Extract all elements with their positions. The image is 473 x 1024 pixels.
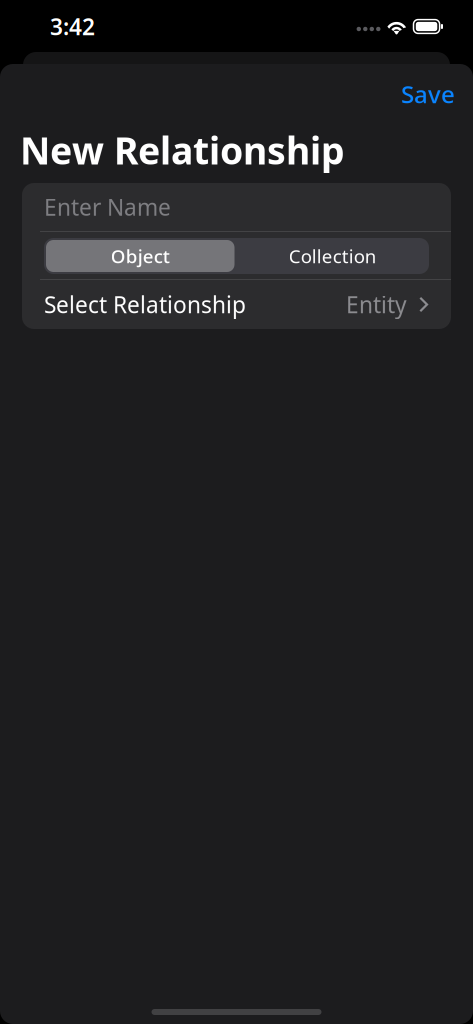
staticText: Save	[401, 78, 455, 110]
staticText: Entity	[346, 289, 407, 319]
staticText: 3:42	[50, 11, 95, 41]
staticText: Enter Name	[44, 192, 171, 222]
staticText: Collection	[289, 244, 377, 268]
button[interactable]: Collection	[236, 238, 429, 274]
button[interactable]: Object	[44, 238, 236, 274]
button[interactable]: Select Relationship	[22, 280, 451, 329]
staticText: Select Relationship	[44, 289, 246, 319]
button[interactable]: Save	[390, 67, 466, 121]
button[interactable]: Enter Name	[22, 183, 451, 231]
staticText: Object	[111, 244, 170, 268]
staticText: New Relationship	[20, 125, 345, 175]
